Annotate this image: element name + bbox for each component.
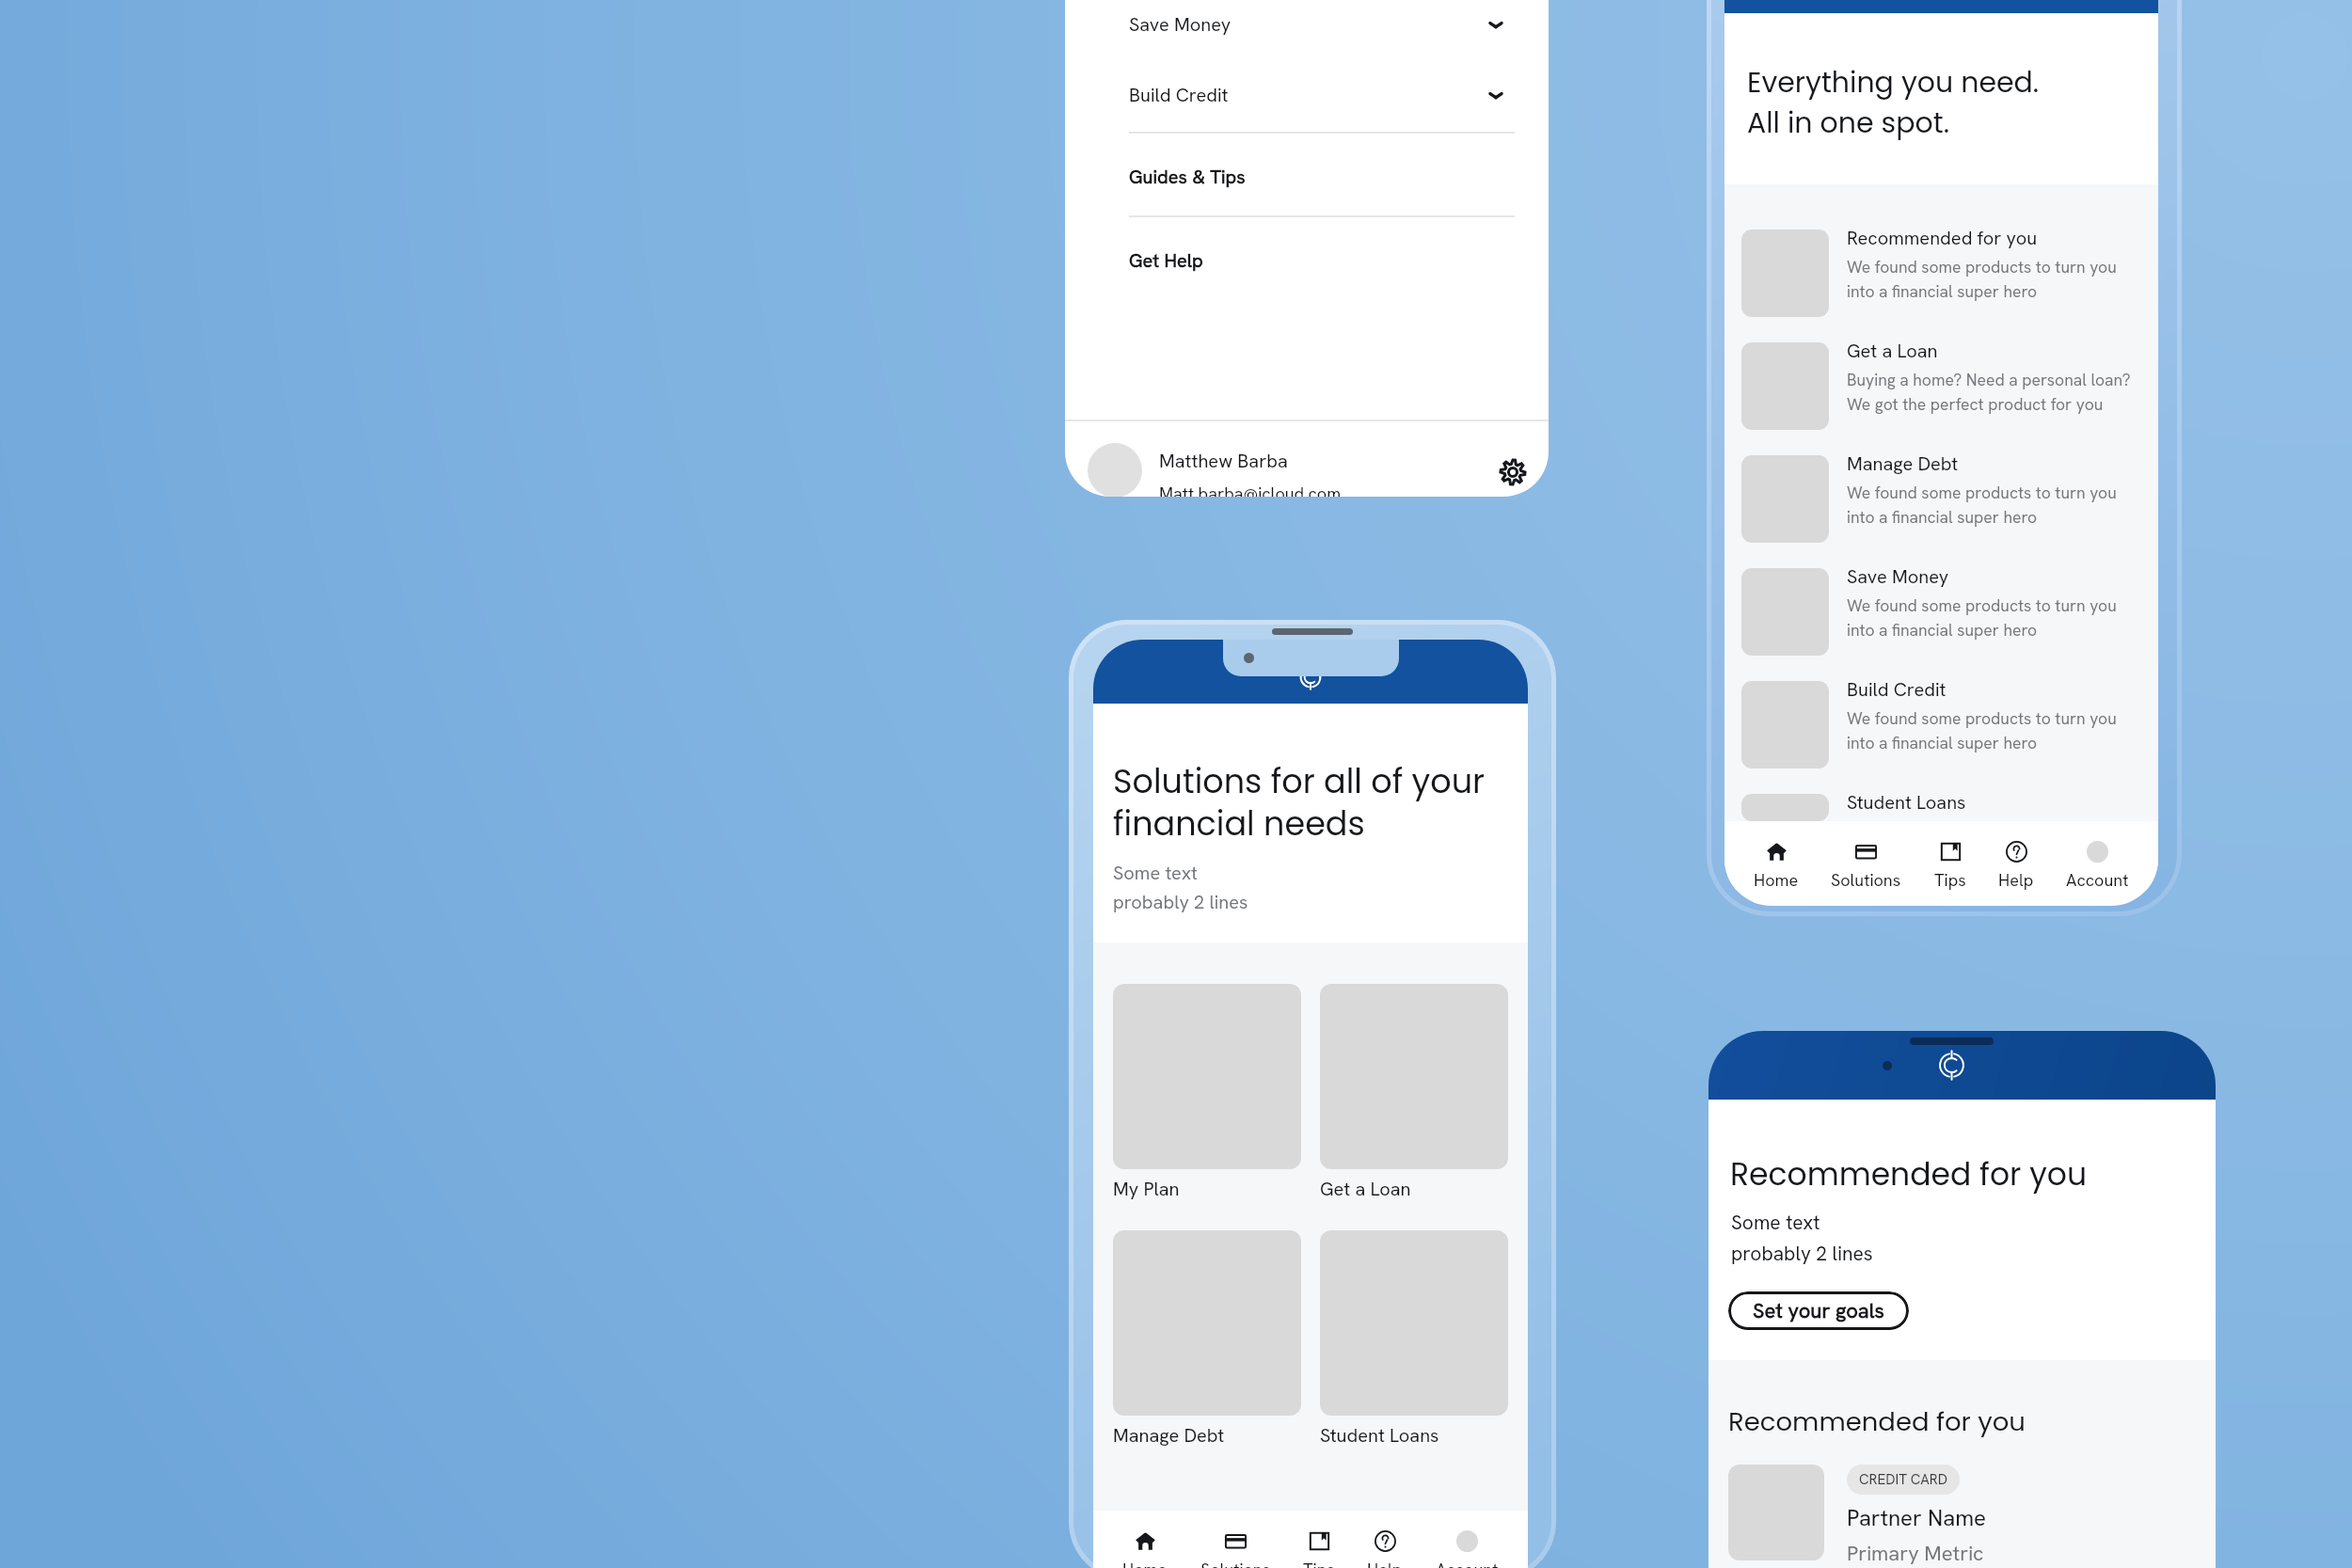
staticText: Get a Loan bbox=[1847, 339, 1938, 363]
staticText: Some text probably 2 lines bbox=[1731, 1210, 1873, 1267]
staticText: Solutions for all of your financial need… bbox=[1113, 758, 1486, 847]
staticText: Build Credit bbox=[1129, 83, 1229, 107]
button[interactable]: Save Money bbox=[1065, 11, 1549, 38]
button[interactable]: Recommended for you bbox=[1724, 226, 2158, 339]
button[interactable]: Settings bbox=[1494, 453, 1532, 491]
staticText: We found some products to turn you into … bbox=[1847, 256, 2117, 302]
button[interactable]: Account bbox=[2063, 841, 2132, 891]
button[interactable]: Get a Loan bbox=[1724, 339, 2158, 451]
staticText: We found some products to turn you into … bbox=[1847, 707, 2117, 753]
staticText: Help bbox=[1998, 869, 2034, 891]
staticText: Get Help bbox=[1129, 248, 1203, 273]
button[interactable]: Tips bbox=[1300, 1530, 1338, 1568]
staticText: Buying a home? Need a personal loan? We … bbox=[1847, 369, 2131, 415]
button[interactable]: Manage Debt bbox=[1113, 1230, 1301, 1448]
button[interactable]: Get a Loan bbox=[1320, 984, 1508, 1201]
staticText: Tips bbox=[1303, 1559, 1335, 1568]
staticText: We found some products to turn you into … bbox=[1847, 594, 2117, 641]
staticText: Solutions bbox=[1200, 1559, 1271, 1568]
staticText: Student Loans bbox=[1847, 790, 1966, 815]
button[interactable]: Home bbox=[1751, 841, 1802, 891]
button[interactable]: Help bbox=[1364, 1530, 1406, 1568]
button[interactable]: CREDIT CARD bbox=[1728, 1465, 1987, 1567]
staticText: Get a Loan bbox=[1320, 1177, 1411, 1201]
staticText: Everything you need. All in one spot. bbox=[1747, 63, 2040, 142]
staticText: Help bbox=[1367, 1559, 1403, 1568]
staticText: Set your goals bbox=[1753, 1297, 1884, 1324]
button[interactable]: Set your goals bbox=[1728, 1291, 1909, 1330]
staticText: Some text probably 2 lines bbox=[1113, 861, 1248, 914]
staticText: We found some products to turn you into … bbox=[1847, 482, 2117, 528]
staticText: Partner Name bbox=[1847, 1503, 1987, 1532]
staticText: Student Loans bbox=[1320, 1423, 1439, 1448]
staticText: Manage Debt bbox=[1113, 1423, 1225, 1448]
button[interactable]: Save Money bbox=[1724, 564, 2158, 677]
staticText: Save Money bbox=[1847, 564, 1949, 589]
staticText: Home bbox=[1122, 1559, 1168, 1568]
staticText: Home bbox=[1754, 869, 1799, 891]
staticText: Manage Debt bbox=[1847, 451, 1959, 476]
button[interactable]: Guides & Tips bbox=[1065, 164, 1549, 190]
staticText: Recommended for you bbox=[1728, 1403, 2026, 1439]
staticText: Tips bbox=[1934, 869, 1966, 891]
button[interactable]: Solutions bbox=[1198, 1530, 1274, 1568]
staticText: Recommended for you bbox=[1730, 1152, 2088, 1196]
staticText: Account bbox=[1436, 1559, 1499, 1568]
staticText: Build Credit bbox=[1847, 677, 1947, 702]
staticText: Guides & Tips bbox=[1129, 165, 1246, 189]
staticText: Recommended for you bbox=[1847, 226, 2038, 250]
button[interactable]: My Plan bbox=[1113, 984, 1301, 1201]
button[interactable]: Manage Debt bbox=[1724, 451, 2158, 564]
button[interactable]: Account bbox=[1433, 1530, 1502, 1568]
button[interactable]: Build Credit bbox=[1065, 82, 1549, 108]
button[interactable]: Tips bbox=[1931, 841, 1969, 891]
staticText: Solutions bbox=[1831, 869, 1901, 891]
staticText: Account bbox=[2066, 869, 2129, 891]
staticText: CREDIT CARD bbox=[1859, 1470, 1947, 1489]
staticText: Matthew Barba bbox=[1159, 449, 1288, 473]
staticText: My Plan bbox=[1113, 1177, 1180, 1201]
button[interactable]: Student Loans bbox=[1724, 790, 2158, 821]
button[interactable]: Help bbox=[1995, 841, 2037, 891]
button[interactable]: Solutions bbox=[1828, 841, 1904, 891]
staticText: Primary Metric bbox=[1847, 1540, 1984, 1567]
button[interactable]: Matthew Barba bbox=[1065, 440, 1549, 497]
staticText: Matt.barba@icloud.com bbox=[1159, 483, 1342, 497]
button[interactable]: Get Help bbox=[1065, 247, 1549, 274]
staticText: Save Money bbox=[1129, 12, 1232, 37]
button[interactable]: Build Credit bbox=[1724, 677, 2158, 790]
button[interactable]: Home bbox=[1120, 1530, 1170, 1568]
button[interactable]: Student Loans bbox=[1320, 1230, 1508, 1448]
